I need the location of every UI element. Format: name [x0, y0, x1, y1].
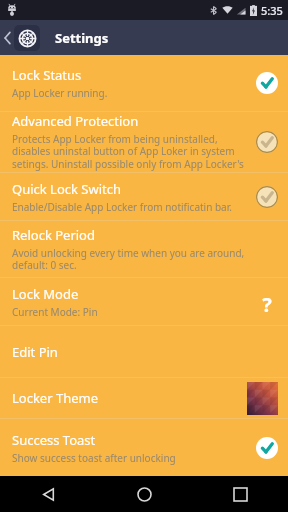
- button[interactable]: Locker Theme: [0, 378, 288, 418]
- staticText: 5:35: [261, 3, 283, 18]
- button[interactable]: Edit Pin: [0, 326, 288, 377]
- staticText: ?: [262, 291, 272, 313]
- staticText: Locker Theme: [12, 389, 99, 407]
- staticText: Show success toast after unlocking: [12, 451, 176, 465]
- button[interactable]: Help: [256, 291, 278, 313]
- staticText: Lock Mode: [12, 285, 79, 303]
- staticText: Settings: [55, 29, 109, 47]
- button[interactable]: Recent apps: [192, 476, 288, 512]
- staticText: Lock Status: [12, 66, 82, 84]
- button[interactable]: Lock Mode: [0, 278, 288, 325]
- button[interactable]: Lock Status: [0, 55, 288, 111]
- staticText: App Locker running.: [12, 86, 108, 100]
- button[interactable]: Success Toast: [0, 419, 288, 476]
- button[interactable]: Back: [0, 476, 96, 512]
- staticText: Relock Period: [12, 226, 95, 244]
- staticText: Current Mode: Pin: [12, 305, 98, 319]
- button[interactable]: Relock Period: [0, 221, 288, 277]
- button[interactable]: Advanced Protection: [0, 112, 288, 172]
- staticText: Success Toast: [12, 431, 96, 449]
- button[interactable]: Home: [96, 476, 192, 512]
- staticText: Advanced Protection: [12, 112, 139, 130]
- staticText: Edit Pin: [12, 343, 58, 361]
- button[interactable]: Quick Lock Switch: [0, 173, 288, 220]
- staticText: Enable/Disable App Locker from notificat…: [12, 200, 232, 214]
- staticText: Quick Lock Switch: [12, 180, 122, 198]
- staticText: Protects App Locker from being uninstall…: [12, 132, 248, 172]
- button[interactable]: Navigate up: [0, 23, 44, 53]
- staticText: Avoid unlocking every time when you are …: [12, 246, 278, 272]
